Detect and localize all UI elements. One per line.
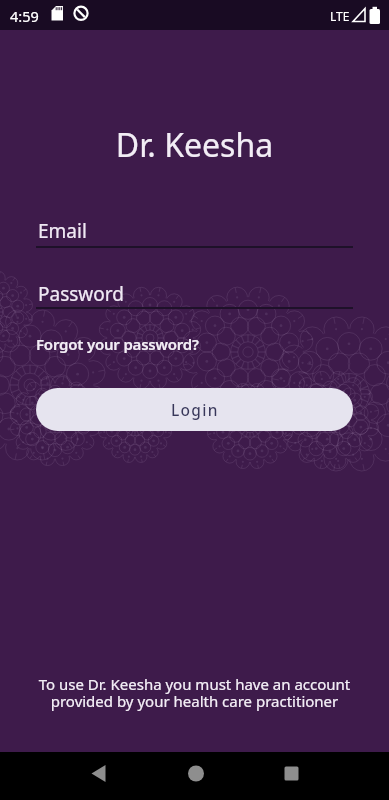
staticText: To use Dr. Keesha you must have an accou… [0,674,389,712]
staticText: LTE [330,8,350,24]
button[interactable]: Forgot your password? [36,334,199,354]
button[interactable] [73,752,121,800]
staticText: Forgot your password? [36,334,199,354]
staticText: Email [38,218,87,244]
button[interactable] [267,752,315,800]
staticText: Dr. Keesha [0,123,389,167]
staticText: Password [38,281,124,307]
button[interactable]: Login [36,388,353,431]
button[interactable]: Password [36,275,353,311]
staticText: 4:59 [10,6,39,26]
button[interactable] [172,752,220,800]
button[interactable]: Email [36,212,353,248]
staticText: Login [171,399,219,420]
